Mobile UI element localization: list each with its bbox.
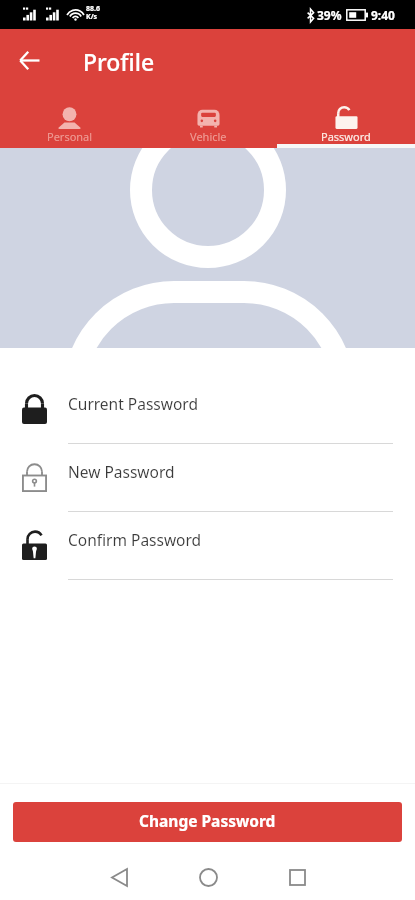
staticText: Confirm Password xyxy=(68,529,202,550)
staticText: 88.6 K/s xyxy=(86,4,100,21)
button[interactable]: Back xyxy=(11,42,47,78)
button[interactable]: Current Password xyxy=(0,384,415,452)
staticText: Password xyxy=(321,129,371,144)
button[interactable]: New Password xyxy=(0,452,415,520)
button[interactable]: Change Password xyxy=(13,802,402,842)
staticText: New Password xyxy=(68,461,175,482)
button[interactable]: Recents xyxy=(253,851,342,900)
button[interactable]: Home xyxy=(164,851,253,900)
button[interactable]: Personal xyxy=(0,90,139,148)
staticText: 39% xyxy=(317,7,342,23)
button[interactable]: Confirm Password xyxy=(0,520,415,588)
button[interactable]: Vehicle xyxy=(139,90,277,148)
staticText: Vehicle xyxy=(190,129,227,144)
staticText: Personal xyxy=(47,129,93,144)
button[interactable]: Password xyxy=(277,90,415,148)
staticText: Current Password xyxy=(68,393,198,414)
staticText: Change Password xyxy=(139,810,276,831)
staticText: 9:40 xyxy=(371,7,395,23)
button[interactable]: Back xyxy=(75,851,164,900)
staticText: Profile xyxy=(83,46,155,77)
